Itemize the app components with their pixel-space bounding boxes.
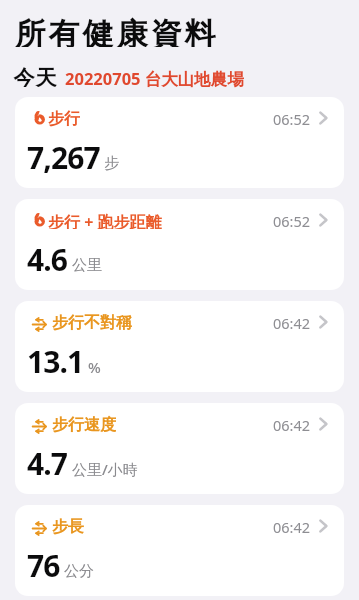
staticText: 步行不對稱 (52, 313, 132, 331)
staticText: 4.6 (27, 239, 68, 280)
staticText: 7,267 (27, 137, 100, 178)
staticText: 06:42 (273, 313, 311, 331)
staticText: 76 (27, 545, 60, 586)
staticText: 步長 (52, 517, 84, 535)
staticText: 公分 (64, 562, 94, 581)
staticText: 今天 (13, 65, 57, 87)
button[interactable]: 步行 (15, 97, 344, 188)
staticText: 06:52 (273, 211, 311, 229)
staticText: % (88, 357, 101, 377)
button[interactable]: 步行不對稱 (15, 301, 344, 392)
staticText: 公里/小時 (72, 459, 138, 479)
button[interactable]: 步行 + 跑步距離 (15, 199, 344, 290)
staticText: 步行速度 (52, 415, 116, 433)
button[interactable]: 步行速度 (15, 403, 344, 494)
staticText: 06:52 (273, 109, 311, 127)
staticText: 步行 (48, 109, 80, 127)
staticText: 所有健康資料 (13, 15, 217, 47)
staticText: 4.7 (27, 443, 68, 484)
staticText: 步行 + 跑步距離 (48, 211, 162, 229)
staticText: 步 (104, 154, 119, 173)
button[interactable]: 步長 (15, 505, 344, 596)
staticText: 06:42 (273, 517, 311, 535)
staticText: 13.1 (27, 341, 84, 382)
staticText: 20220705 台大山地農場 (65, 67, 244, 89)
staticText: 公里 (72, 256, 102, 275)
staticText: 06:42 (273, 415, 311, 433)
